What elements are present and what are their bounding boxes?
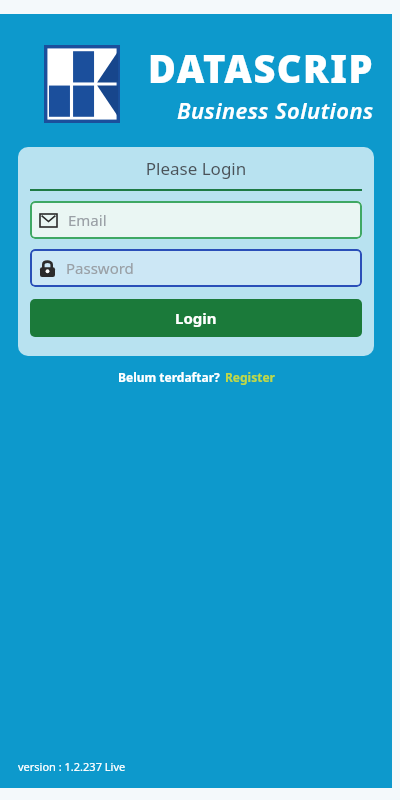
staticText: Password [66,258,134,278]
staticText: version : 1.2.237 Live [18,759,126,774]
button[interactable]: Password [30,249,362,287]
staticText: Register [225,369,275,385]
staticText: Business Solutions [177,95,374,125]
other: Email [40,214,57,227]
staticText: DATASCRIP [148,42,374,94]
staticText: Belum terdaftar? [118,369,220,385]
button[interactable]: Login [30,299,362,337]
staticText: Please Login [30,157,362,180]
staticText: Login [175,308,217,328]
staticText: Email [68,210,107,230]
other: Password [40,260,55,277]
button[interactable]: Email [30,201,362,239]
button[interactable]: Register [225,369,275,385]
